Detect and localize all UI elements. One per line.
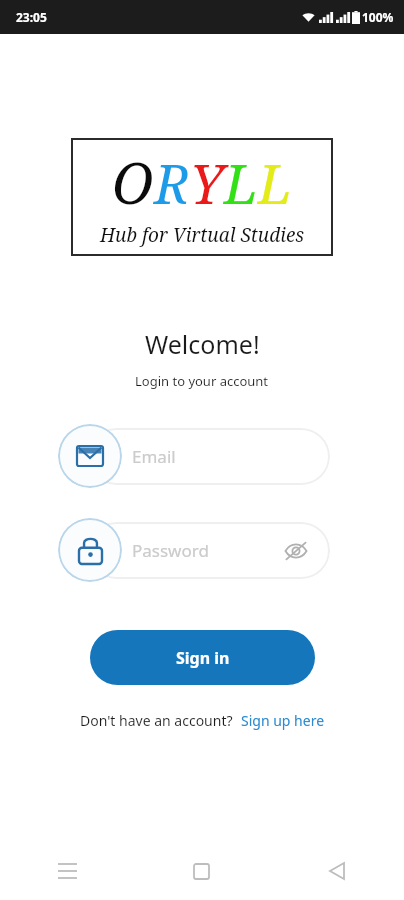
staticText: R <box>154 146 190 220</box>
staticText: Welcome! <box>145 327 260 361</box>
button[interactable]: Recent apps <box>0 842 134 900</box>
staticText: L <box>224 146 258 220</box>
button[interactable]: Email <box>58 424 122 488</box>
button[interactable]: Toggle password visibility <box>276 531 316 571</box>
staticText: Sign in <box>176 647 230 669</box>
staticText: Y <box>190 146 224 220</box>
button[interactable]: Sign up here <box>241 711 325 730</box>
staticText: Login to your account <box>135 372 269 390</box>
button[interactable]: Home <box>134 842 269 900</box>
button[interactable]: Back <box>269 842 404 900</box>
staticText: L <box>258 146 292 220</box>
staticText: Sign up here <box>241 711 325 730</box>
staticText: 23:05 <box>16 9 47 25</box>
staticText: Password <box>132 539 209 562</box>
staticText: Hub for Virtual Studies <box>100 222 305 248</box>
button[interactable]: Password <box>88 522 330 579</box>
button[interactable]: Sign in <box>90 630 315 685</box>
staticText: Email <box>132 445 176 468</box>
button[interactable]: Password <box>58 518 122 582</box>
staticText: O <box>112 144 154 220</box>
staticText: Don't have an account? <box>80 711 233 730</box>
button[interactable]: Email <box>88 428 330 485</box>
staticText: 100% <box>362 9 394 25</box>
